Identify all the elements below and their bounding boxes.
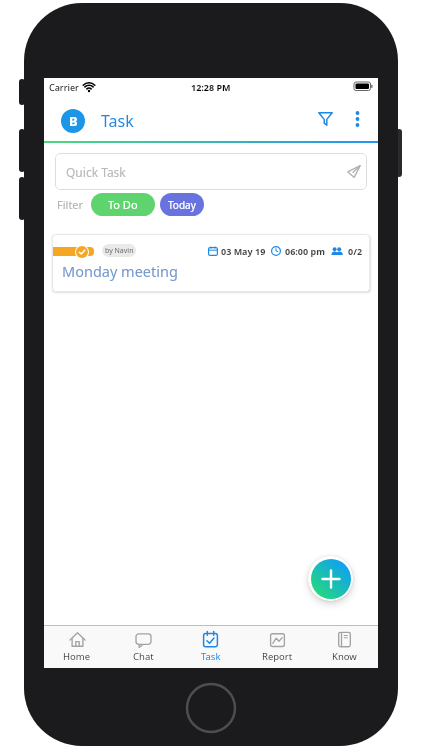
- staticText: Home: [63, 650, 91, 663]
- button[interactable]: Quick Task: [55, 153, 367, 190]
- staticText: B: [69, 112, 78, 130]
- button[interactable]: Home: [44, 625, 110, 668]
- staticText: Report: [262, 650, 293, 663]
- button[interactable]: Know: [311, 625, 378, 668]
- button[interactable]: by Navin: [52, 234, 370, 292]
- staticText: Filter: [57, 197, 84, 212]
- staticText: 06:00 pm: [285, 245, 325, 257]
- staticText: 03 May 19: [221, 245, 266, 257]
- staticText: Today: [168, 198, 196, 212]
- staticText: Know: [332, 650, 357, 663]
- button[interactable]: To Do: [91, 193, 155, 216]
- button[interactable]: B: [61, 109, 85, 133]
- staticText: Quick Task: [66, 164, 126, 180]
- staticText: To Do: [108, 197, 138, 212]
- button[interactable]: Report: [244, 625, 311, 668]
- button[interactable]: [348, 108, 366, 130]
- button[interactable]: Today: [160, 193, 204, 216]
- button[interactable]: [308, 556, 353, 601]
- staticText: by Navin: [105, 246, 134, 256]
- button[interactable]: Chat: [110, 625, 177, 668]
- staticText: Monday meeting: [62, 261, 178, 281]
- staticText: Task: [201, 650, 221, 663]
- button[interactable]: Task: [177, 625, 244, 668]
- staticText: Chat: [133, 650, 154, 663]
- staticText: 12:28 PM: [191, 81, 231, 93]
- staticText: Task: [101, 110, 134, 132]
- button[interactable]: [314, 108, 336, 130]
- staticText: 0/2: [348, 245, 363, 257]
- staticText: Carrier: [49, 81, 79, 93]
